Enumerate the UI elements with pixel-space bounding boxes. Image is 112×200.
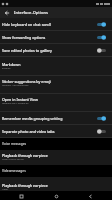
button[interactable]: Back	[85, 192, 95, 200]
staticText: Show forwarding options	[2, 35, 97, 40]
staticText: Voice messages	[2, 142, 27, 146]
button[interactable]: Sticker suggestions by emoji	[0, 76, 112, 94]
staticText: Save edited photos to gallery	[2, 48, 97, 53]
staticText: Videomessages	[2, 169, 26, 173]
staticText: Never	[2, 188, 9, 191]
button[interactable]: Recent apps	[16, 192, 26, 200]
staticText: When close to sensor	[2, 158, 24, 161]
staticText: Remember media grouping setting	[2, 116, 97, 121]
button[interactable]: Markdown	[0, 57, 112, 76]
button[interactable]: Back	[1, 7, 12, 18]
staticText: Enabled	[2, 67, 11, 70]
button[interactable]: Save edited photos to gallery	[0, 44, 112, 57]
button[interactable]: Show forwarding options	[0, 31, 112, 44]
button[interactable]: Remember media grouping setting	[0, 112, 112, 125]
staticText: Hide keyboard on chat scroll	[2, 22, 97, 27]
staticText: Installed + recommended	[2, 84, 29, 87]
staticText: Playback through earpiece	[2, 183, 48, 188]
staticText: Markdown	[2, 62, 21, 67]
staticText: Playback through earpiece	[2, 153, 48, 158]
button[interactable]: Separate photo and video tabs	[0, 125, 112, 138]
button[interactable]: Playback through earpiece	[0, 177, 112, 191]
staticText: Interface-Options	[14, 10, 48, 15]
button[interactable]: Hide keyboard on chat scroll	[0, 18, 112, 31]
staticText: telegram.org + telegra.ph	[2, 102, 29, 105]
staticText: Sticker suggestions by emoji	[2, 79, 51, 84]
button[interactable]: Playback through earpiece	[0, 150, 112, 165]
button[interactable]: Home	[51, 192, 61, 200]
button[interactable]: Open in Instant View	[0, 94, 112, 112]
staticText: Open in Instant View	[2, 97, 38, 102]
staticText: Separate photo and video tabs	[2, 129, 97, 134]
